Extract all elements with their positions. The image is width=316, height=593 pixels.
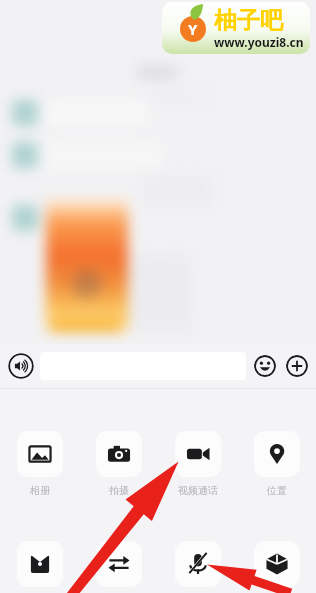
- staticText: 相册: [30, 484, 50, 497]
- button[interactable]: 位置: [237, 431, 316, 497]
- button[interactable]: 我的收藏: [237, 541, 316, 593]
- button[interactable]: 拍摄: [79, 431, 158, 497]
- staticText: Y: [188, 19, 198, 39]
- button[interactable]: 转账: [79, 541, 158, 593]
- button[interactable]: 相册: [0, 431, 79, 497]
- button[interactable]: More: [286, 355, 308, 377]
- button[interactable]: Emoji: [254, 355, 276, 377]
- button[interactable]: 语音输入: [158, 541, 237, 593]
- button[interactable]: Voice message: [8, 353, 34, 379]
- staticText: 柚子吧: [214, 6, 283, 35]
- staticText: 位置: [267, 484, 287, 497]
- staticText: 视频通话: [178, 484, 218, 497]
- staticText: 拍摄: [109, 484, 129, 497]
- button[interactable]: 红包: [0, 541, 79, 593]
- staticText: www.youzi8.cn: [214, 34, 304, 50]
- button[interactable]: 视频通话: [158, 431, 237, 497]
